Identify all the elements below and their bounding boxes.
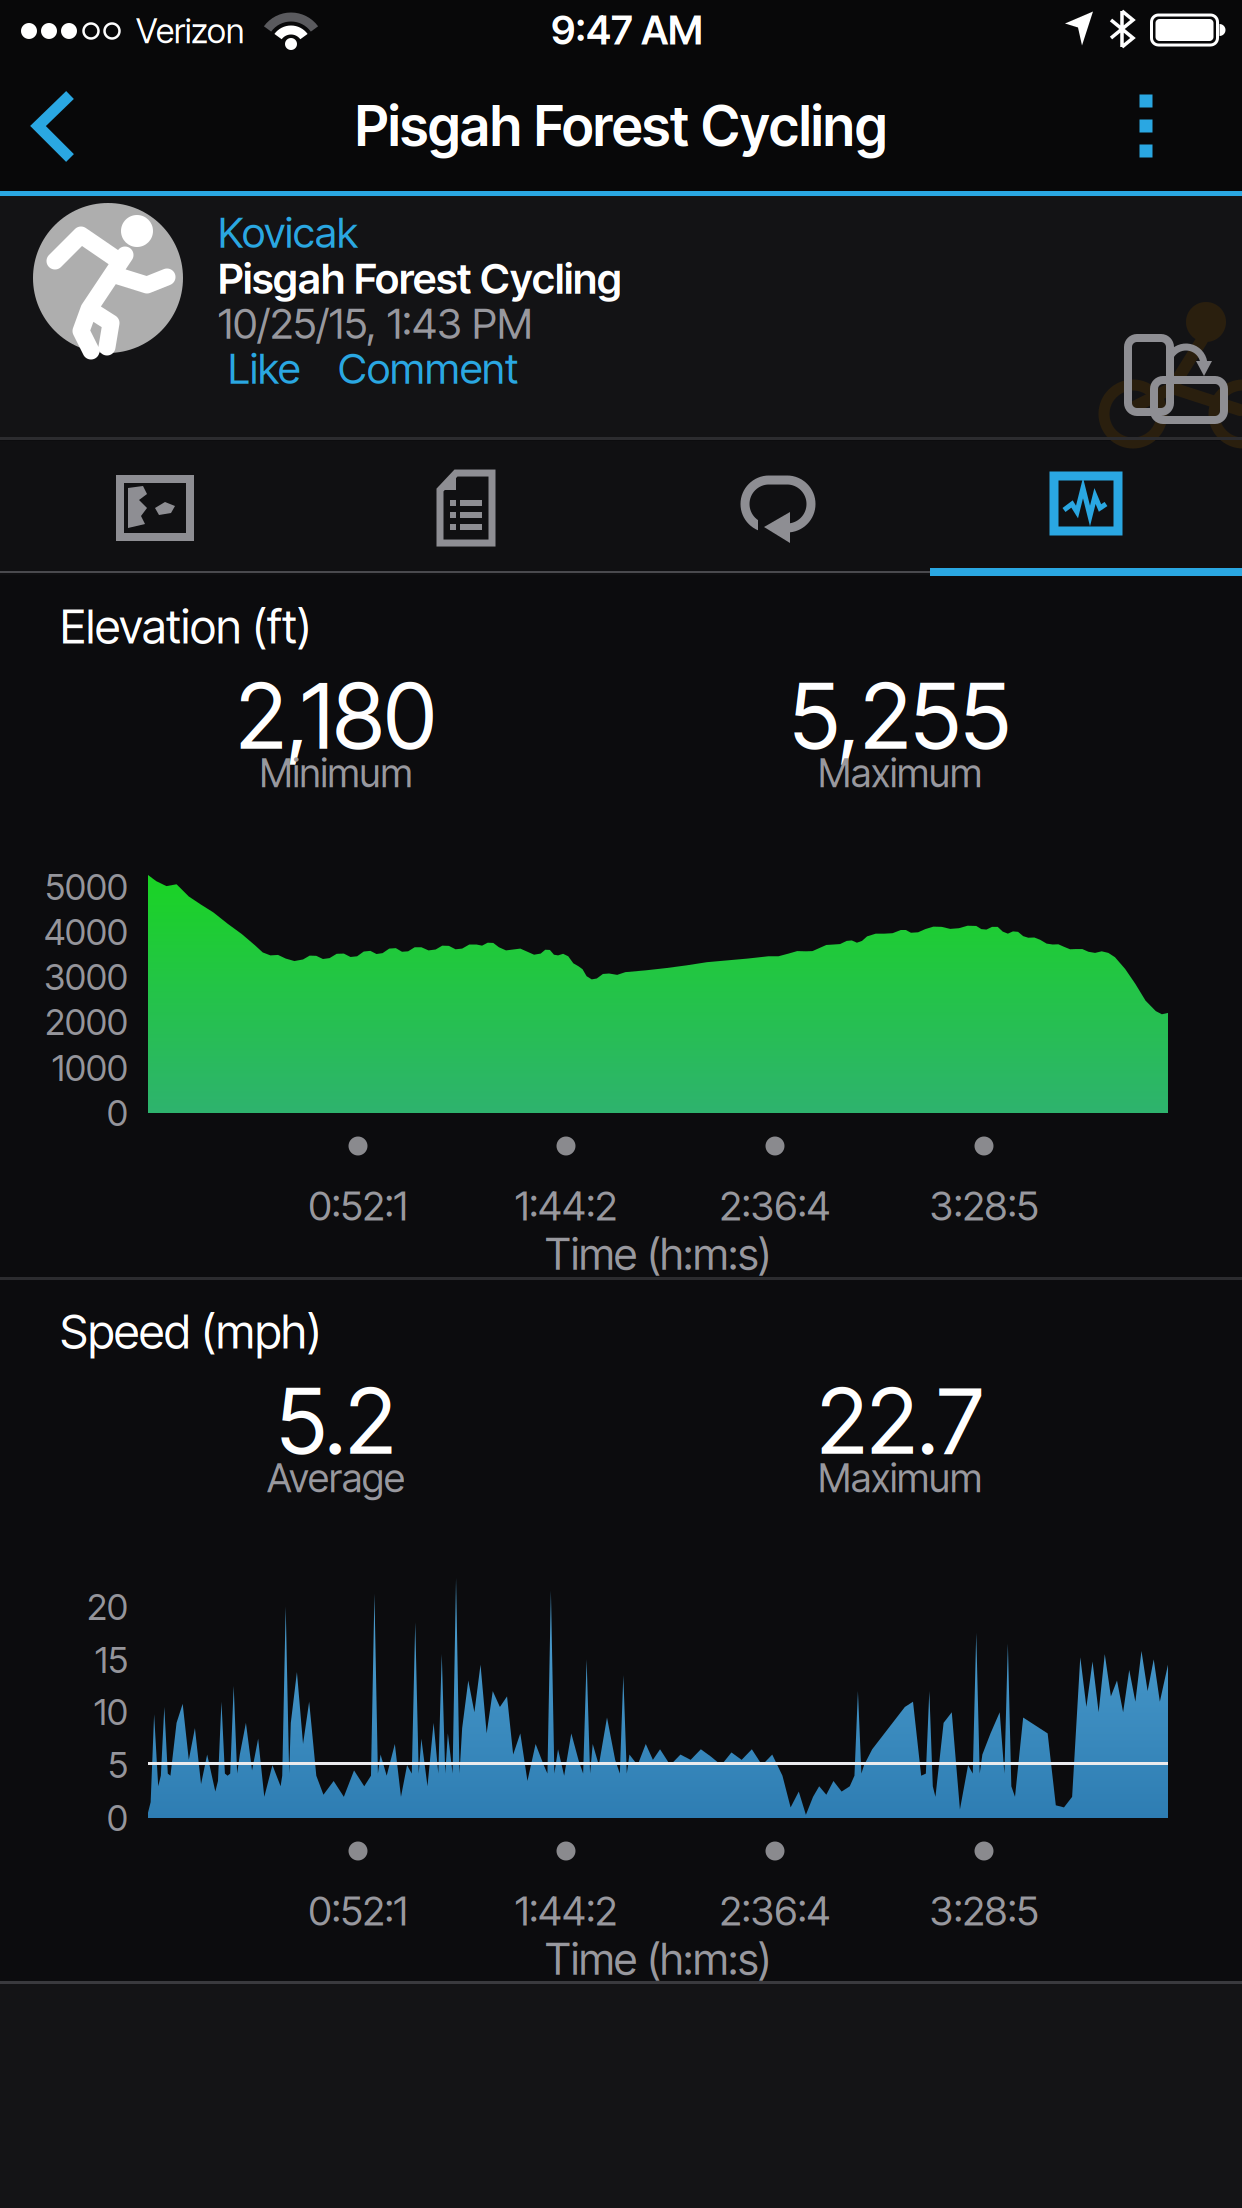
staticText: Average (267, 1454, 405, 1502)
staticText: Minimum (259, 749, 412, 797)
staticText: 5 (108, 1743, 128, 1787)
button[interactable]: Details (396, 450, 536, 566)
button[interactable]: Comment (338, 343, 518, 394)
staticText: Pisgah Forest Cycling (218, 253, 622, 304)
staticText: Elevation (ft) (60, 598, 312, 655)
staticText: 10/25/15, 1:43 PM (218, 298, 533, 349)
button[interactable]: Send to device (1126, 332, 1226, 424)
staticText: 2:36:4 (719, 1887, 830, 1935)
staticText: 2,180 (236, 662, 436, 770)
staticText: 5000 (45, 865, 128, 909)
staticText: 15 (95, 1638, 128, 1682)
staticText: 4000 (44, 910, 128, 954)
staticText: Speed (mph) (60, 1303, 322, 1360)
staticText: 3:28:5 (929, 1887, 1038, 1935)
staticText: 22.7 (817, 1367, 983, 1475)
staticText: Like (228, 343, 300, 394)
staticText: 1:44:2 (515, 1887, 617, 1935)
button[interactable]: Laps (706, 450, 846, 566)
staticText: Time (h:m:s) (545, 1228, 771, 1280)
staticText: 9:47 AM (551, 6, 703, 54)
staticText: Pisgah Forest Cycling (355, 93, 887, 159)
staticText: 2:36:4 (719, 1182, 830, 1230)
staticText: 1:44:2 (515, 1182, 617, 1230)
button[interactable]: Like (228, 343, 300, 394)
staticText: 1000 (52, 1046, 128, 1090)
button[interactable]: Kovicak (218, 207, 358, 258)
button[interactable]: Profile photo (33, 203, 183, 353)
button[interactable]: Map (85, 450, 225, 566)
staticText: 20 (87, 1585, 128, 1629)
staticText: 10 (94, 1690, 128, 1734)
button[interactable]: Charts (1016, 450, 1156, 566)
staticText: 0 (107, 1796, 128, 1840)
staticText: 0:52:1 (308, 1887, 407, 1935)
staticText: Time (h:m:s) (545, 1933, 771, 1985)
staticText: Kovicak (218, 207, 358, 258)
staticText: 5,255 (789, 662, 1010, 770)
staticText: 3000 (44, 955, 128, 999)
staticText: Verizon (136, 10, 244, 51)
staticText: 3:28:5 (929, 1182, 1038, 1230)
staticText: 0:52:1 (308, 1182, 407, 1230)
button[interactable]: More options (1111, 80, 1181, 172)
staticText: Maximum (818, 1454, 982, 1502)
staticText: 0 (107, 1091, 128, 1135)
staticText: 5.2 (276, 1367, 395, 1475)
staticText: 2000 (45, 1000, 128, 1044)
staticText: Maximum (818, 749, 982, 797)
button[interactable]: Back (20, 81, 100, 171)
staticText: Comment (338, 343, 518, 394)
